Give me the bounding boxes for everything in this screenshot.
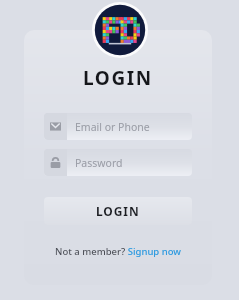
staticText: Password — [75, 156, 123, 170]
staticText: Email or Phone — [75, 120, 150, 134]
staticText: LOGIN — [83, 65, 153, 91]
staticText: Not a member? Signup now — [55, 245, 181, 258]
button[interactable]: Not a member? Signup now — [49, 243, 187, 260]
button[interactable]: LOGIN — [44, 197, 192, 225]
staticText: LOGIN — [96, 203, 140, 219]
button[interactable]: Password — [44, 149, 192, 176]
button[interactable]: Email or Phone — [44, 113, 192, 140]
other: Foolish Developer logo — [92, 2, 148, 58]
